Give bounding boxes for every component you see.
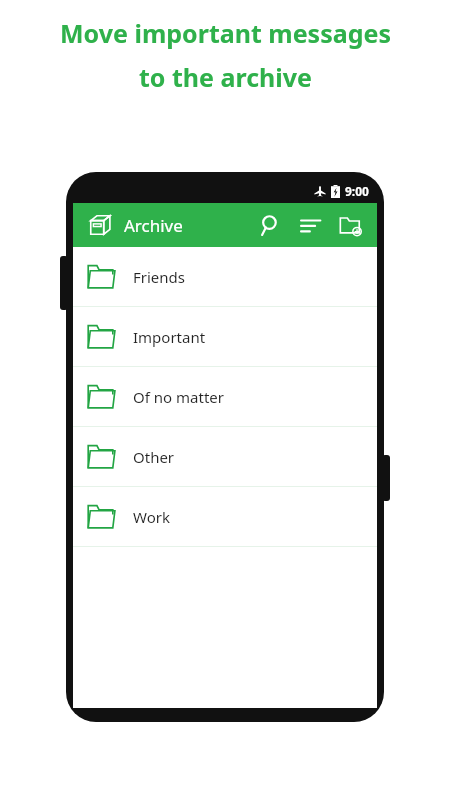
- staticText: Friends: [133, 267, 185, 287]
- staticText: Important: [133, 327, 206, 347]
- button[interactable]: Friends: [73, 247, 377, 306]
- button[interactable]: New folder: [333, 208, 367, 242]
- staticText: Archive: [124, 214, 183, 237]
- staticText: 9:00: [345, 183, 369, 199]
- button[interactable]: Important: [73, 307, 377, 366]
- button[interactable]: Of no matter: [73, 367, 377, 426]
- staticText: Work: [133, 507, 170, 527]
- button[interactable]: Archive: [85, 210, 115, 240]
- staticText: Other: [133, 447, 175, 467]
- staticText: to the archive: [139, 60, 312, 94]
- staticText: Of no matter: [133, 387, 224, 407]
- button[interactable]: Work: [73, 487, 377, 546]
- button[interactable]: Search: [253, 208, 287, 242]
- staticText: Move important messages: [60, 16, 391, 50]
- button[interactable]: Other: [73, 427, 377, 486]
- button[interactable]: Sort: [293, 208, 327, 242]
